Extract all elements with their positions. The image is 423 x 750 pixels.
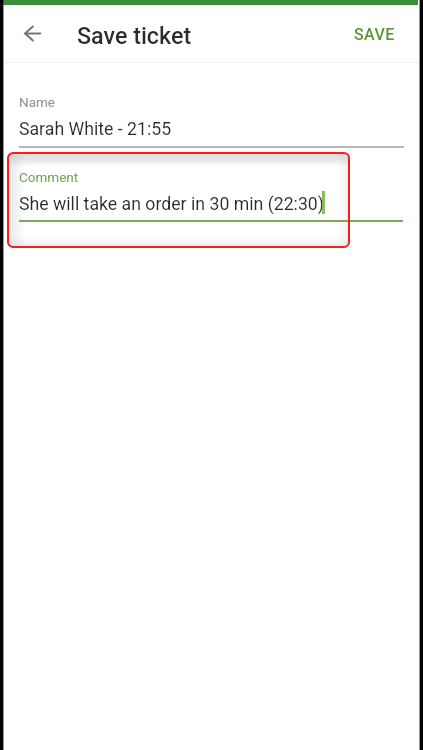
staticText: SAVE — [354, 25, 395, 44]
staticText: Sarah White - 21:55 — [19, 119, 172, 140]
staticText: Save ticket — [77, 22, 192, 49]
button[interactable]: SAVE — [342, 11, 407, 58]
button[interactable]: Name — [19, 88, 404, 148]
staticText: She will take an order in 30 min (22:30) — [19, 194, 324, 215]
button[interactable]: Comment — [19, 163, 403, 222]
staticText: Comment — [19, 169, 79, 185]
button[interactable]: Back — [9, 9, 57, 57]
staticText: Name — [19, 94, 55, 110]
